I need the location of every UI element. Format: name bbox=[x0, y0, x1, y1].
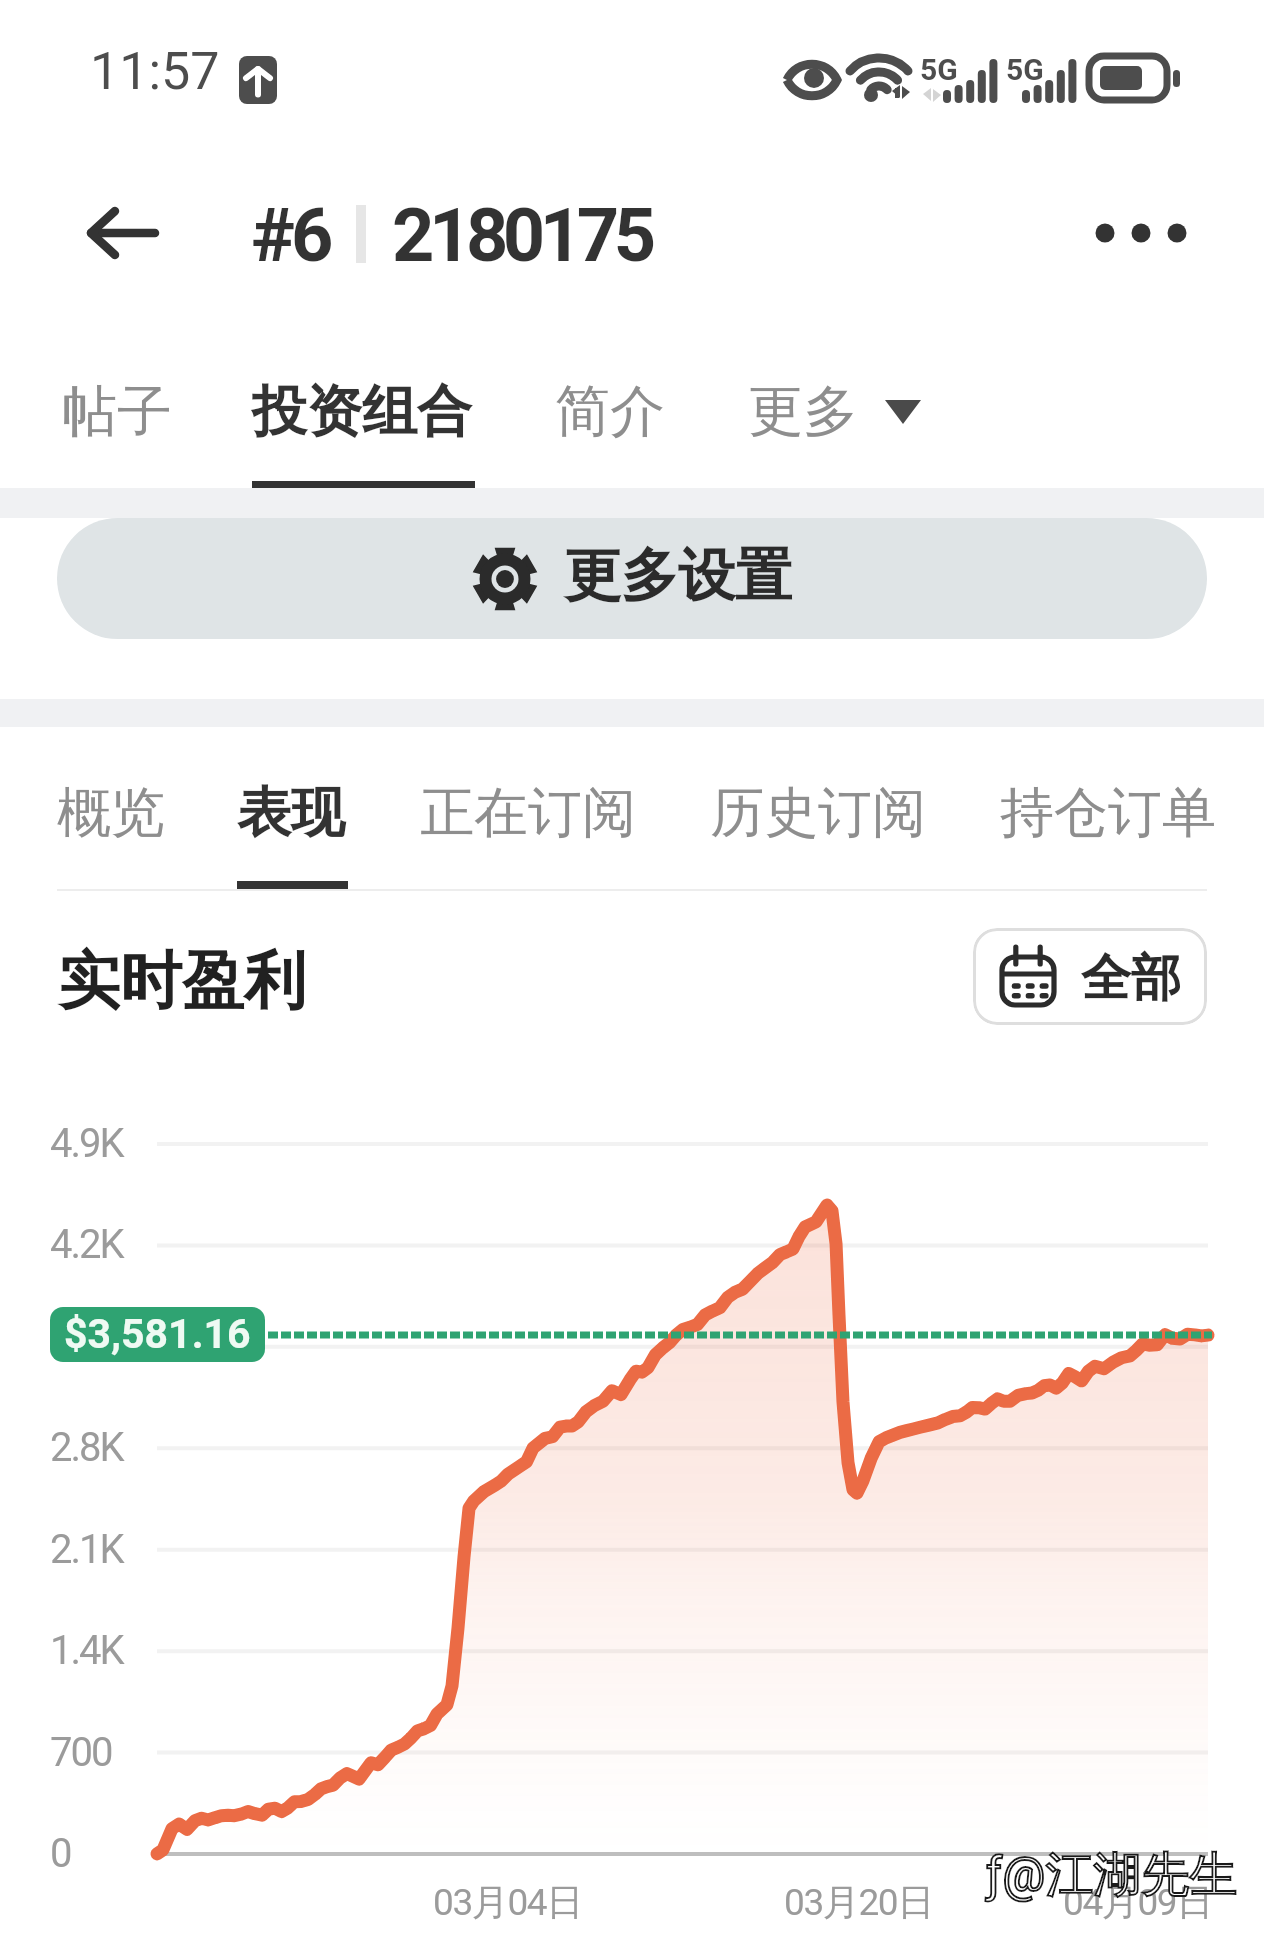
staticText: 03月04日 bbox=[433, 1879, 582, 1926]
staticText: 4.2K bbox=[50, 1221, 123, 1268]
staticText: 2180175 bbox=[392, 192, 651, 279]
staticText: 2.1K bbox=[50, 1526, 123, 1573]
staticText: 5G bbox=[1006, 52, 1044, 87]
button[interactable]: 帖子 bbox=[48, 363, 186, 460]
staticText: 1.4K bbox=[50, 1627, 123, 1674]
staticText: #6 bbox=[251, 192, 330, 279]
staticText: 帖子 bbox=[62, 377, 172, 446]
staticText: 持仓订单 bbox=[1000, 779, 1216, 847]
staticText: 历史订阅 bbox=[710, 779, 926, 847]
button[interactable]: 投资组合 bbox=[238, 363, 486, 460]
staticText: $3,581.16 bbox=[64, 1310, 251, 1358]
staticText: 概览 bbox=[57, 779, 165, 847]
button[interactable]: 更多 bbox=[734, 363, 935, 460]
button[interactable]: 表现 bbox=[223, 765, 359, 861]
button[interactable]: Back bbox=[82, 200, 164, 266]
button[interactable]: 全部 bbox=[973, 928, 1207, 1025]
staticText: 表现 bbox=[237, 779, 345, 847]
button[interactable]: 持仓订单 bbox=[986, 765, 1230, 861]
staticText: 实时盈利 bbox=[58, 942, 306, 1020]
staticText: 全部 bbox=[1081, 947, 1181, 1010]
staticText: 04月09日 bbox=[1063, 1879, 1212, 1926]
button[interactable]: 概览 bbox=[43, 765, 179, 861]
staticText: 5G bbox=[920, 52, 958, 87]
staticText: ƒ@江湖先生 bbox=[986, 1845, 1238, 1905]
staticText: 投资组合 bbox=[252, 377, 472, 446]
button[interactable]: 更多设置 bbox=[57, 518, 1207, 639]
staticText: 4.9K bbox=[50, 1120, 123, 1167]
staticText: ƒ@江湖先生 bbox=[986, 1845, 1238, 1905]
staticText: 2.8K bbox=[50, 1424, 123, 1471]
button[interactable]: 正在订阅 bbox=[406, 765, 650, 861]
staticText: 正在订阅 bbox=[420, 779, 636, 847]
staticText: 0 bbox=[50, 1830, 71, 1877]
button[interactable]: More options bbox=[1082, 200, 1194, 266]
staticText: 简介 bbox=[555, 377, 665, 446]
button[interactable]: 历史订阅 bbox=[696, 765, 940, 861]
staticText: 更多 bbox=[748, 377, 858, 446]
staticText: 700 bbox=[50, 1729, 112, 1776]
staticText: 03月20日 bbox=[784, 1879, 933, 1926]
button[interactable]: 简介 bbox=[541, 363, 679, 460]
staticText: 更多设置 bbox=[564, 540, 792, 612]
staticText: 11:57 bbox=[90, 41, 220, 102]
